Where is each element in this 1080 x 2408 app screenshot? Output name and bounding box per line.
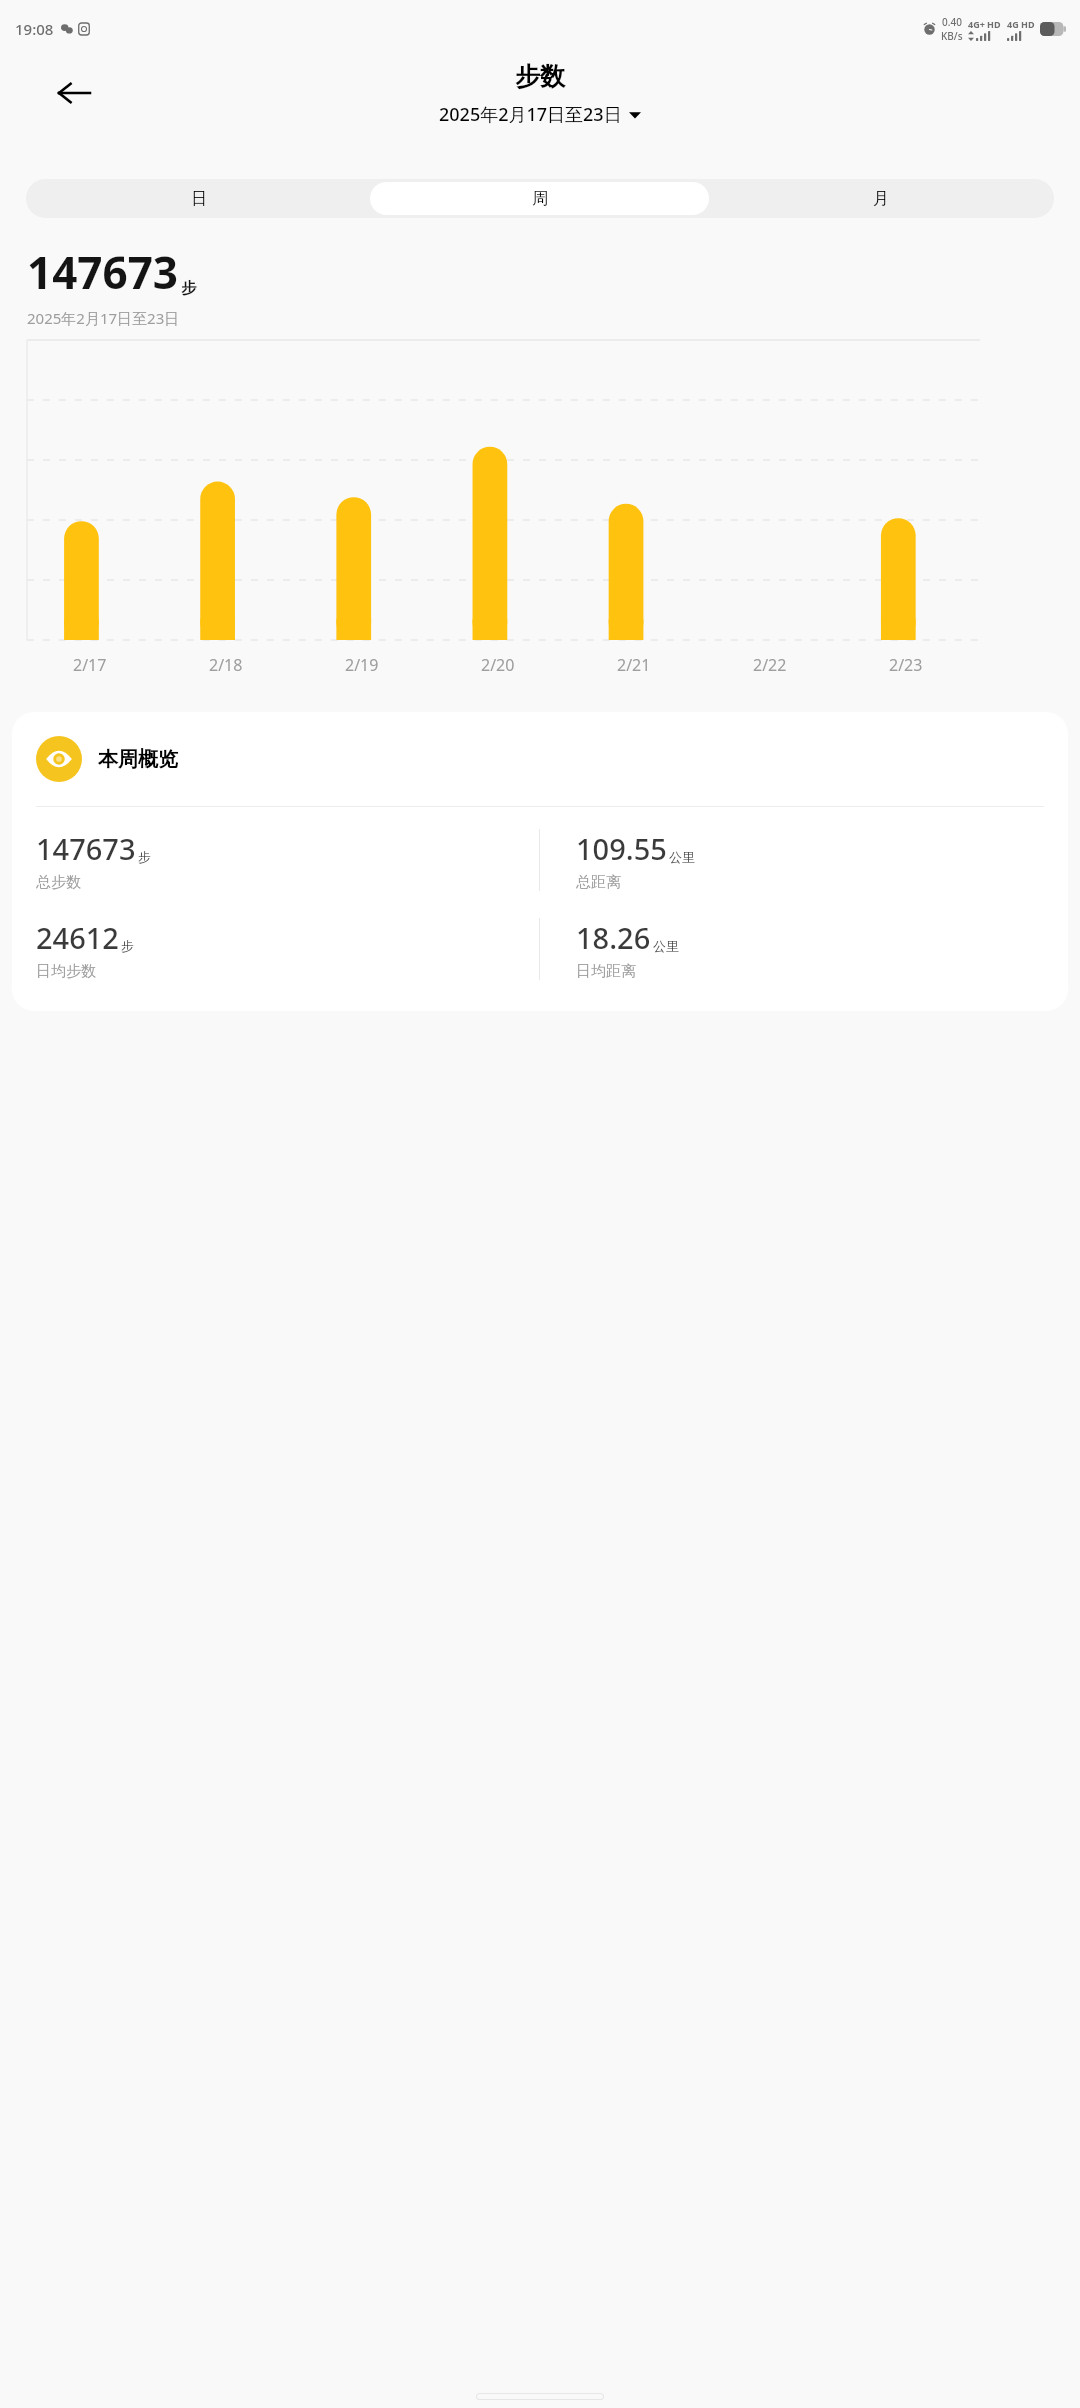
staticText: 2/17 (73, 654, 107, 676)
staticText: HD (987, 18, 1001, 30)
staticText: 月 (873, 189, 889, 209)
staticText: 本周概览 (98, 747, 178, 772)
button[interactable]: 周 (370, 182, 709, 215)
staticText: 步 (121, 938, 134, 954)
staticText: KB/s (941, 29, 963, 43)
staticText: 4G+ (968, 18, 985, 30)
staticText: 2025年2月17日至23日 (439, 102, 622, 127)
staticText: 步 (181, 279, 196, 298)
button[interactable]: 月 (711, 182, 1050, 215)
staticText: 步数 (515, 61, 565, 92)
staticText: 4G (1007, 18, 1019, 30)
staticText: 109.55 (576, 829, 667, 868)
button[interactable]: Back (48, 67, 100, 119)
staticText: 2/23 (889, 654, 923, 676)
staticText: 公里 (653, 938, 679, 954)
staticText: 总距离 (576, 873, 621, 892)
staticText: 0.40 (942, 15, 962, 29)
button[interactable]: 2025年2月17日至23日 (435, 100, 645, 129)
staticText: 公里 (669, 849, 695, 865)
staticText: 147673 (36, 829, 136, 868)
staticText: 总步数 (36, 873, 81, 892)
staticText: 步 (138, 849, 151, 865)
staticText: 2/20 (481, 654, 515, 676)
staticText: 周 (532, 189, 548, 209)
button[interactable]: 本周概览 (12, 712, 1068, 1011)
staticText: 24612 (36, 918, 119, 957)
staticText: 2/18 (209, 654, 243, 676)
staticText: 日均步数 (36, 962, 96, 981)
staticText: 147673 (27, 242, 179, 302)
button[interactable]: 日 (30, 182, 368, 215)
staticText: 2/22 (753, 654, 787, 676)
staticText: 2/19 (345, 654, 379, 676)
staticText: HD (1021, 18, 1035, 30)
staticText: 2/21 (617, 654, 651, 676)
staticText: 日均距离 (576, 962, 636, 981)
staticText: 18.26 (576, 918, 651, 957)
staticText: 日 (191, 189, 207, 209)
staticText: 2025年2月17日至23日 (27, 308, 180, 328)
staticText: 19:08 (15, 19, 54, 39)
